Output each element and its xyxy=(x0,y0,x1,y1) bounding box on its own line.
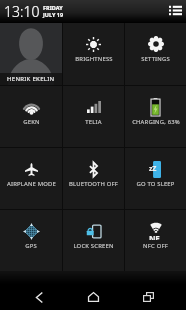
staticText: SETTINGS xyxy=(141,55,170,63)
button[interactable]: TELIA xyxy=(63,86,124,147)
staticText: FRIDAY xyxy=(43,4,63,11)
button[interactable]: CHARGING, 63% xyxy=(125,86,186,147)
staticText: BLUETOOTH OFF xyxy=(69,180,118,188)
staticText: GO TO SLEEP xyxy=(136,180,175,188)
staticText: HENRIK EKELIN xyxy=(7,75,55,83)
button[interactable]: SETTINGS xyxy=(125,23,186,85)
staticText: zZ xyxy=(149,164,156,174)
button[interactable]: GEKN xyxy=(0,86,62,147)
button[interactable]: zZ xyxy=(125,148,186,209)
staticText: NFC xyxy=(149,233,163,240)
staticText: BRIGHTNESS xyxy=(75,55,113,63)
button[interactable]: BRIGHTNESS xyxy=(63,23,124,85)
staticText: LOCK SCREEN xyxy=(73,242,114,250)
button[interactable]: Home xyxy=(75,284,112,310)
staticText: AIRPLANE MODE xyxy=(7,180,56,188)
staticText: GPS xyxy=(25,242,37,250)
button[interactable]: AIRPLANE MODE xyxy=(0,148,62,209)
staticText: JULY 19 xyxy=(43,11,64,18)
button[interactable]: HENRIK EKELIN xyxy=(0,23,62,85)
staticText: CHARGING, 63% xyxy=(132,118,180,126)
button[interactable]: GPS xyxy=(0,210,62,271)
button[interactable]: Recents xyxy=(130,284,167,310)
button[interactable]: LOCK SCREEN xyxy=(63,210,124,271)
staticText: GEKN xyxy=(23,118,40,126)
button[interactable]: NFC xyxy=(125,210,186,271)
button[interactable]: Quick settings list xyxy=(165,0,186,21)
button[interactable]: BLUETOOTH OFF xyxy=(63,148,124,209)
staticText: NFC OFF xyxy=(143,242,168,250)
staticText: TELIA xyxy=(85,118,102,126)
staticText: 13:10 xyxy=(4,2,40,21)
button[interactable]: Back xyxy=(20,284,57,310)
